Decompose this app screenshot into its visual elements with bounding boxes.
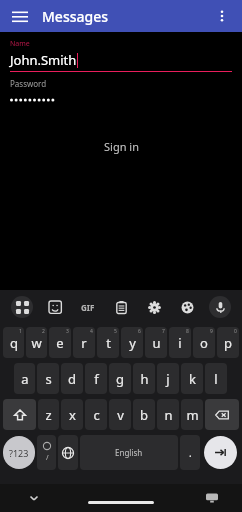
staticText: Password — [10, 78, 47, 89]
button[interactable]: Enter — [204, 436, 237, 469]
button[interactable]: e — [49, 327, 71, 358]
button[interactable]: a — [14, 363, 35, 394]
button[interactable]: More options — [210, 4, 234, 28]
staticText: h — [140, 370, 149, 388]
button[interactable]: John.Smith — [10, 51, 232, 69]
button[interactable]: Shift — [3, 399, 36, 430]
button[interactable]: g — [109, 363, 131, 394]
button[interactable]: Emoji — [37, 435, 56, 470]
button[interactable]: u — [145, 327, 167, 358]
button[interactable]: Switch keyboard — [202, 488, 222, 508]
button[interactable]: Themes — [170, 290, 203, 324]
button[interactable]: Change language — [58, 435, 78, 470]
button[interactable]: o — [193, 327, 215, 358]
button[interactable]: t — [97, 327, 119, 358]
button[interactable]: x — [61, 399, 83, 430]
staticText: . — [189, 446, 192, 460]
button[interactable]: m — [181, 399, 203, 430]
button[interactable]: l — [205, 363, 227, 394]
staticText: l — [214, 370, 218, 388]
staticText: z — [45, 406, 52, 424]
staticText: j — [166, 370, 170, 388]
staticText: 8 — [186, 328, 189, 335]
staticText: 0 — [234, 328, 237, 335]
button[interactable]: i — [169, 327, 191, 358]
staticText: a — [21, 370, 29, 388]
staticText: w — [31, 334, 42, 352]
staticText: i — [178, 334, 182, 352]
staticText: ?123 — [9, 447, 29, 459]
button[interactable]: d — [61, 363, 83, 394]
button[interactable]: z — [38, 399, 59, 430]
button[interactable]: Sign in — [98, 133, 145, 160]
staticText: s — [45, 370, 52, 388]
staticText: Messages — [42, 7, 109, 26]
button[interactable]: GIF — [71, 290, 104, 324]
staticText: 3 — [66, 328, 69, 335]
staticText: p — [224, 334, 232, 352]
button[interactable]: Clipboard — [104, 290, 137, 324]
button[interactable]: y — [121, 327, 143, 358]
button[interactable]: r — [73, 327, 95, 358]
button[interactable]: Hide keyboard — [24, 488, 44, 508]
staticText: d — [68, 370, 76, 388]
staticText: John.Smith — [10, 51, 77, 69]
button[interactable]: Period — [180, 435, 200, 470]
staticText: 5 — [114, 328, 117, 335]
button[interactable]: English — [80, 435, 178, 470]
button[interactable]: ?123 — [3, 436, 35, 469]
button[interactable] — [10, 95, 232, 105]
staticText: y — [129, 334, 136, 352]
staticText: Sign in — [104, 139, 139, 154]
button[interactable]: p — [217, 327, 239, 358]
staticText: n — [164, 406, 173, 424]
button[interactable]: v — [109, 399, 131, 430]
staticText: GIF — [81, 302, 95, 313]
staticText: v — [117, 406, 124, 424]
button[interactable]: Apps — [6, 290, 38, 324]
button[interactable] — [88, 501, 154, 504]
button[interactable]: Open navigation menu — [8, 4, 32, 28]
button[interactable]: f — [85, 363, 107, 394]
button[interactable]: h — [133, 363, 155, 394]
staticText: t — [106, 334, 111, 352]
staticText: 7 — [162, 328, 165, 335]
button[interactable]: n — [157, 399, 179, 430]
staticText: f — [94, 370, 99, 388]
button[interactable]: c — [85, 399, 107, 430]
button[interactable]: Backspace — [205, 399, 239, 430]
staticText: b — [140, 406, 148, 424]
button[interactable]: s — [37, 363, 59, 394]
staticText: 1 — [19, 328, 22, 335]
staticText: k — [189, 370, 196, 388]
staticText: 9 — [210, 328, 213, 335]
button[interactable]: b — [133, 399, 155, 430]
staticText: English — [115, 447, 143, 458]
staticText: 2 — [42, 328, 45, 335]
staticText: o — [200, 334, 208, 352]
staticText: c — [93, 406, 100, 424]
button[interactable]: Stickers — [38, 290, 71, 324]
staticText: 6 — [138, 328, 141, 335]
staticText: u — [152, 334, 161, 352]
staticText: r — [81, 334, 87, 352]
staticText: x — [69, 406, 76, 424]
staticText: e — [56, 334, 64, 352]
button[interactable]: Voice input — [203, 290, 236, 324]
staticText: q — [10, 334, 18, 352]
staticText: g — [116, 370, 124, 388]
staticText: Name — [10, 39, 30, 49]
button[interactable]: k — [181, 363, 203, 394]
staticText: m — [186, 406, 199, 424]
button[interactable]: j — [157, 363, 179, 394]
staticText: / — [46, 453, 49, 463]
staticText: 4 — [90, 328, 93, 335]
button[interactable]: Settings — [137, 290, 170, 324]
button[interactable]: w — [26, 327, 47, 358]
button[interactable]: q — [3, 327, 24, 358]
